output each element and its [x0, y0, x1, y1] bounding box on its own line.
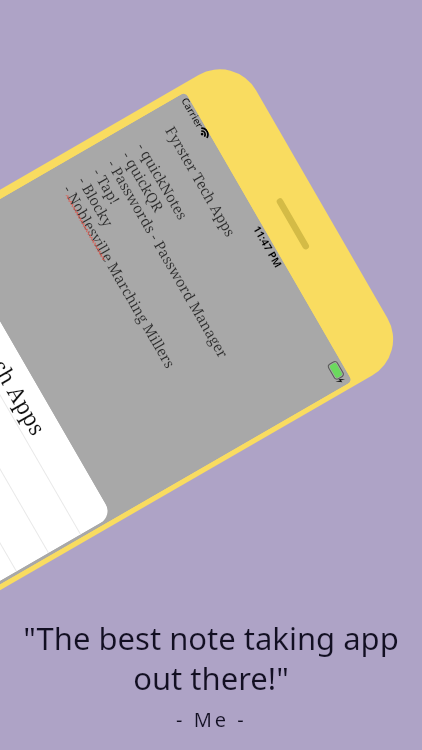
staticText: - Me - [176, 706, 247, 733]
other: Wi-Fi signal [198, 127, 211, 141]
staticText: 11:47 PM [250, 224, 285, 271]
staticText: "The best note taking app out there!" [12, 617, 410, 699]
staticText: Carrier [178, 96, 205, 131]
button[interactable]: Fyrster Tech Apps [0, 229, 113, 679]
staticText: Fyrster Tech Apps - quickNotes - quickQR… [59, 122, 292, 387]
staticText: Fyrster Tech Apps [0, 262, 53, 441]
other: Battery charging [325, 360, 349, 388]
